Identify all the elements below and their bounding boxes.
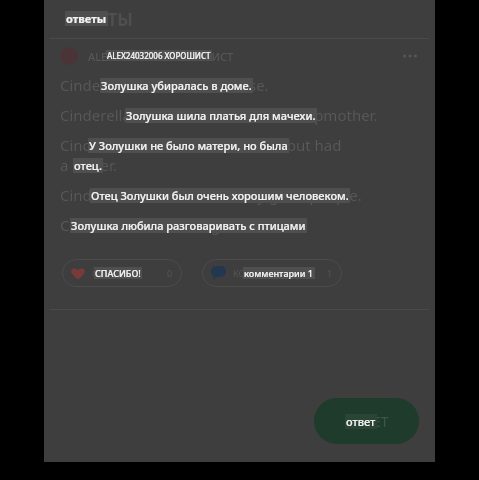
button[interactable]: СПАСИБО! — [62, 259, 182, 287]
staticText: Золушка убиралась в доме. — [101, 78, 252, 93]
staticText: 1 — [327, 267, 333, 279]
staticText: ответ — [346, 414, 376, 429]
staticText: 0 — [167, 267, 173, 279]
staticText: Cinderella liked talking with birds — [60, 215, 294, 235]
staticText: Cinderella didn't have a mother, but had — [60, 135, 342, 155]
staticText: Золушка любила разговаривать с птицами — [71, 218, 306, 233]
staticText: ОТВЕТЫ — [64, 8, 133, 31]
staticText: комментарии 1 — [244, 267, 314, 279]
button[interactable]: More options — [397, 43, 423, 69]
button[interactable]: ALEX24032006 ХОРОШИСТ — [44, 39, 435, 73]
staticText: Cinderella sewed dresses for her stepmot… — [60, 105, 378, 125]
staticText: Золушка шила платья для мачехи. — [126, 108, 316, 123]
staticText: ОТВЕТ — [345, 412, 389, 431]
staticText: Cinderella cleaned her house. — [60, 75, 269, 95]
staticText: Cinderella's father was a very good peop… — [60, 185, 362, 205]
staticText: отец. — [74, 158, 102, 173]
staticText: Отец Золушки был очень хорошим человеком… — [91, 188, 349, 203]
staticText: У Золушки не было матери, но была — [89, 138, 288, 153]
button[interactable]: ОТВЕТ — [314, 398, 419, 444]
button[interactable]: КОММЕНТАРИИ 1 — [202, 259, 342, 287]
staticText: ALEX24032006 ХОРОШИСТ — [107, 50, 211, 61]
staticText: СПАСИБО! — [92, 267, 138, 279]
staticText: СПАСИБО! — [95, 267, 141, 279]
staticText: ALEX24032006 ХОРОШИСТ — [88, 49, 234, 64]
staticText: a father. — [60, 155, 117, 175]
staticText: ответы — [66, 11, 107, 26]
staticText: КОММЕНТАРИИ 1 — [233, 267, 310, 279]
